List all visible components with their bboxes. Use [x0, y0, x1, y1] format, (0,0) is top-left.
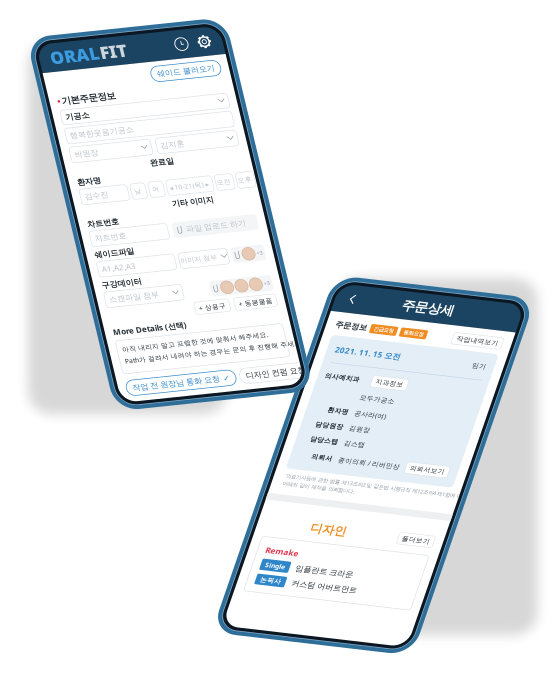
button[interactable]: 지과정보 — [406, 372, 442, 385]
staticText: 임기 — [498, 346, 512, 355]
staticText: 아래와 같이 제작을 의뢰합니다. — [354, 489, 426, 497]
button[interactable]: 의뢰서보기 — [468, 456, 511, 468]
staticText: 종이의뢰 / 리버민상 — [400, 458, 462, 467]
staticText: ORAL — [45, 49, 94, 72]
staticText: 주문상세 — [410, 289, 462, 306]
staticText: 의뢰서 — [373, 458, 394, 466]
button[interactable]: History — [170, 53, 184, 67]
button[interactable]: 작업 전 원장님 통화 요청 ✓ — [42, 392, 152, 408]
staticText: 주문정보 — [352, 320, 384, 330]
staticText: FIT — [95, 49, 122, 72]
staticText: 2021. 11. 15 오전 — [360, 345, 426, 356]
staticText: 긴급요청 — [390, 322, 410, 328]
staticText: 쉐이드파일 — [42, 258, 82, 268]
staticText: 담당원장 — [366, 425, 394, 433]
staticText: 작업내역보기 — [474, 321, 516, 329]
staticText: 차트번호 — [42, 227, 74, 237]
staticText: +3 — [201, 306, 207, 313]
staticText: 차트번호 — [46, 242, 78, 251]
staticText: 김수진 — [46, 198, 70, 208]
staticText: More Details (선택) — [42, 337, 116, 348]
staticText: 오후 — [200, 199, 214, 207]
staticText: 기타 이미지 — [130, 215, 172, 225]
staticText: 스캔파일 첨부 — [46, 304, 96, 314]
staticText: 지과정보 — [410, 374, 438, 383]
button[interactable]: 디자인 컨펌 요청 ✓ — [156, 392, 238, 408]
staticText: 행복한웃음기공소 — [46, 136, 110, 146]
button[interactable]: Back — [351, 286, 369, 309]
staticText: 남 — [96, 199, 103, 207]
staticText: 의뢰서보기 — [472, 458, 507, 466]
staticText: 오전 — [179, 199, 193, 207]
staticText: + 상용구 — [132, 323, 159, 332]
staticText: 박원장 — [46, 155, 70, 165]
staticText: 이미지 첨부 — [125, 274, 162, 282]
staticText: 디자인 컨펌 요청 ✓ — [162, 395, 232, 405]
staticText: 디자인 — [396, 527, 432, 542]
staticText: 환자명 — [373, 409, 394, 417]
staticText: '의료기사등에 관한 법률 제13조의2 및 같은법 시행규칙 제12조의4 제… — [354, 481, 537, 488]
staticText: 기본주문정보 — [46, 99, 100, 111]
staticText: 여 — [114, 199, 121, 207]
button[interactable]: Settings — [193, 53, 207, 67]
button[interactable]: 쉐이드 불러오기 — [140, 80, 210, 96]
staticText: 김지훈 — [132, 155, 156, 165]
button[interactable]: 작업내역보기 — [470, 319, 520, 331]
staticText: + 동봉물품 — [172, 323, 206, 332]
staticText: 의사예치과 — [359, 374, 394, 383]
staticText: 임플란트 크라운 — [395, 573, 453, 583]
staticText: 커스텀 어버트먼트 — [396, 588, 462, 598]
staticText: 기공소 — [46, 117, 70, 127]
staticText: 통화요청 — [420, 322, 440, 328]
staticText: 아직 내리지 말고 프렙한 것에 맞춰서 해주세요. — [47, 356, 194, 365]
staticText: 환자명 — [42, 184, 66, 193]
staticText: 작업 전 원장님 통화 요청 ✓ — [48, 395, 146, 405]
staticText: Path가 걸려서 내려야 하는 경우는 문의 후 진행해 주세요. — [47, 368, 226, 377]
